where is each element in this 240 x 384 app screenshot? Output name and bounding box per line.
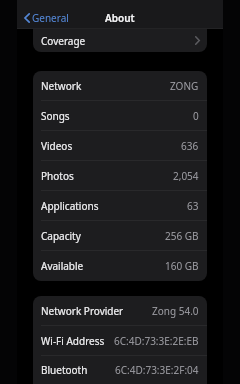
button[interactable]: Available xyxy=(33,251,207,281)
staticText: Photos xyxy=(41,169,74,183)
button[interactable]: Photos xyxy=(33,161,207,191)
button[interactable]: Capacity xyxy=(33,221,207,251)
button[interactable]: Videos xyxy=(33,131,207,161)
staticText: Videos xyxy=(41,139,73,153)
staticText: General xyxy=(32,11,69,25)
staticText: 160 GB xyxy=(165,259,199,273)
staticText: Available xyxy=(41,259,84,273)
button[interactable]: General xyxy=(24,8,69,28)
staticText: Wi-Fi Address xyxy=(41,334,105,348)
button[interactable]: Bluetooth xyxy=(33,356,207,384)
staticText: Network xyxy=(41,79,82,93)
staticText: 6C:4D:73:3E:2F:04 xyxy=(115,363,199,377)
button[interactable]: Network Provider xyxy=(33,296,207,326)
button[interactable]: Songs xyxy=(33,101,207,131)
staticText: Applications xyxy=(41,199,99,213)
staticText: Bluetooth xyxy=(41,363,88,377)
staticText: Capacity xyxy=(41,229,81,243)
staticText: 63 xyxy=(187,199,199,213)
staticText: 2,054 xyxy=(173,169,199,183)
staticText: Zong 54.0 xyxy=(152,304,199,318)
button[interactable]: Network xyxy=(33,71,207,101)
button[interactable]: Wi-Fi Address xyxy=(33,326,207,356)
staticText: Network Provider xyxy=(41,304,124,318)
staticText: Coverage xyxy=(41,34,86,48)
staticText: 636 xyxy=(181,139,199,153)
staticText: 6C:4D:73:3E:2E:EB xyxy=(114,334,199,348)
staticText: 256 GB xyxy=(165,229,199,243)
button[interactable]: Applications xyxy=(33,191,207,221)
staticText: About xyxy=(105,11,135,25)
staticText: 0 xyxy=(193,109,199,123)
staticText: ZONG xyxy=(170,79,199,93)
button[interactable]: Coverage xyxy=(33,29,207,52)
staticText: Songs xyxy=(41,109,70,123)
